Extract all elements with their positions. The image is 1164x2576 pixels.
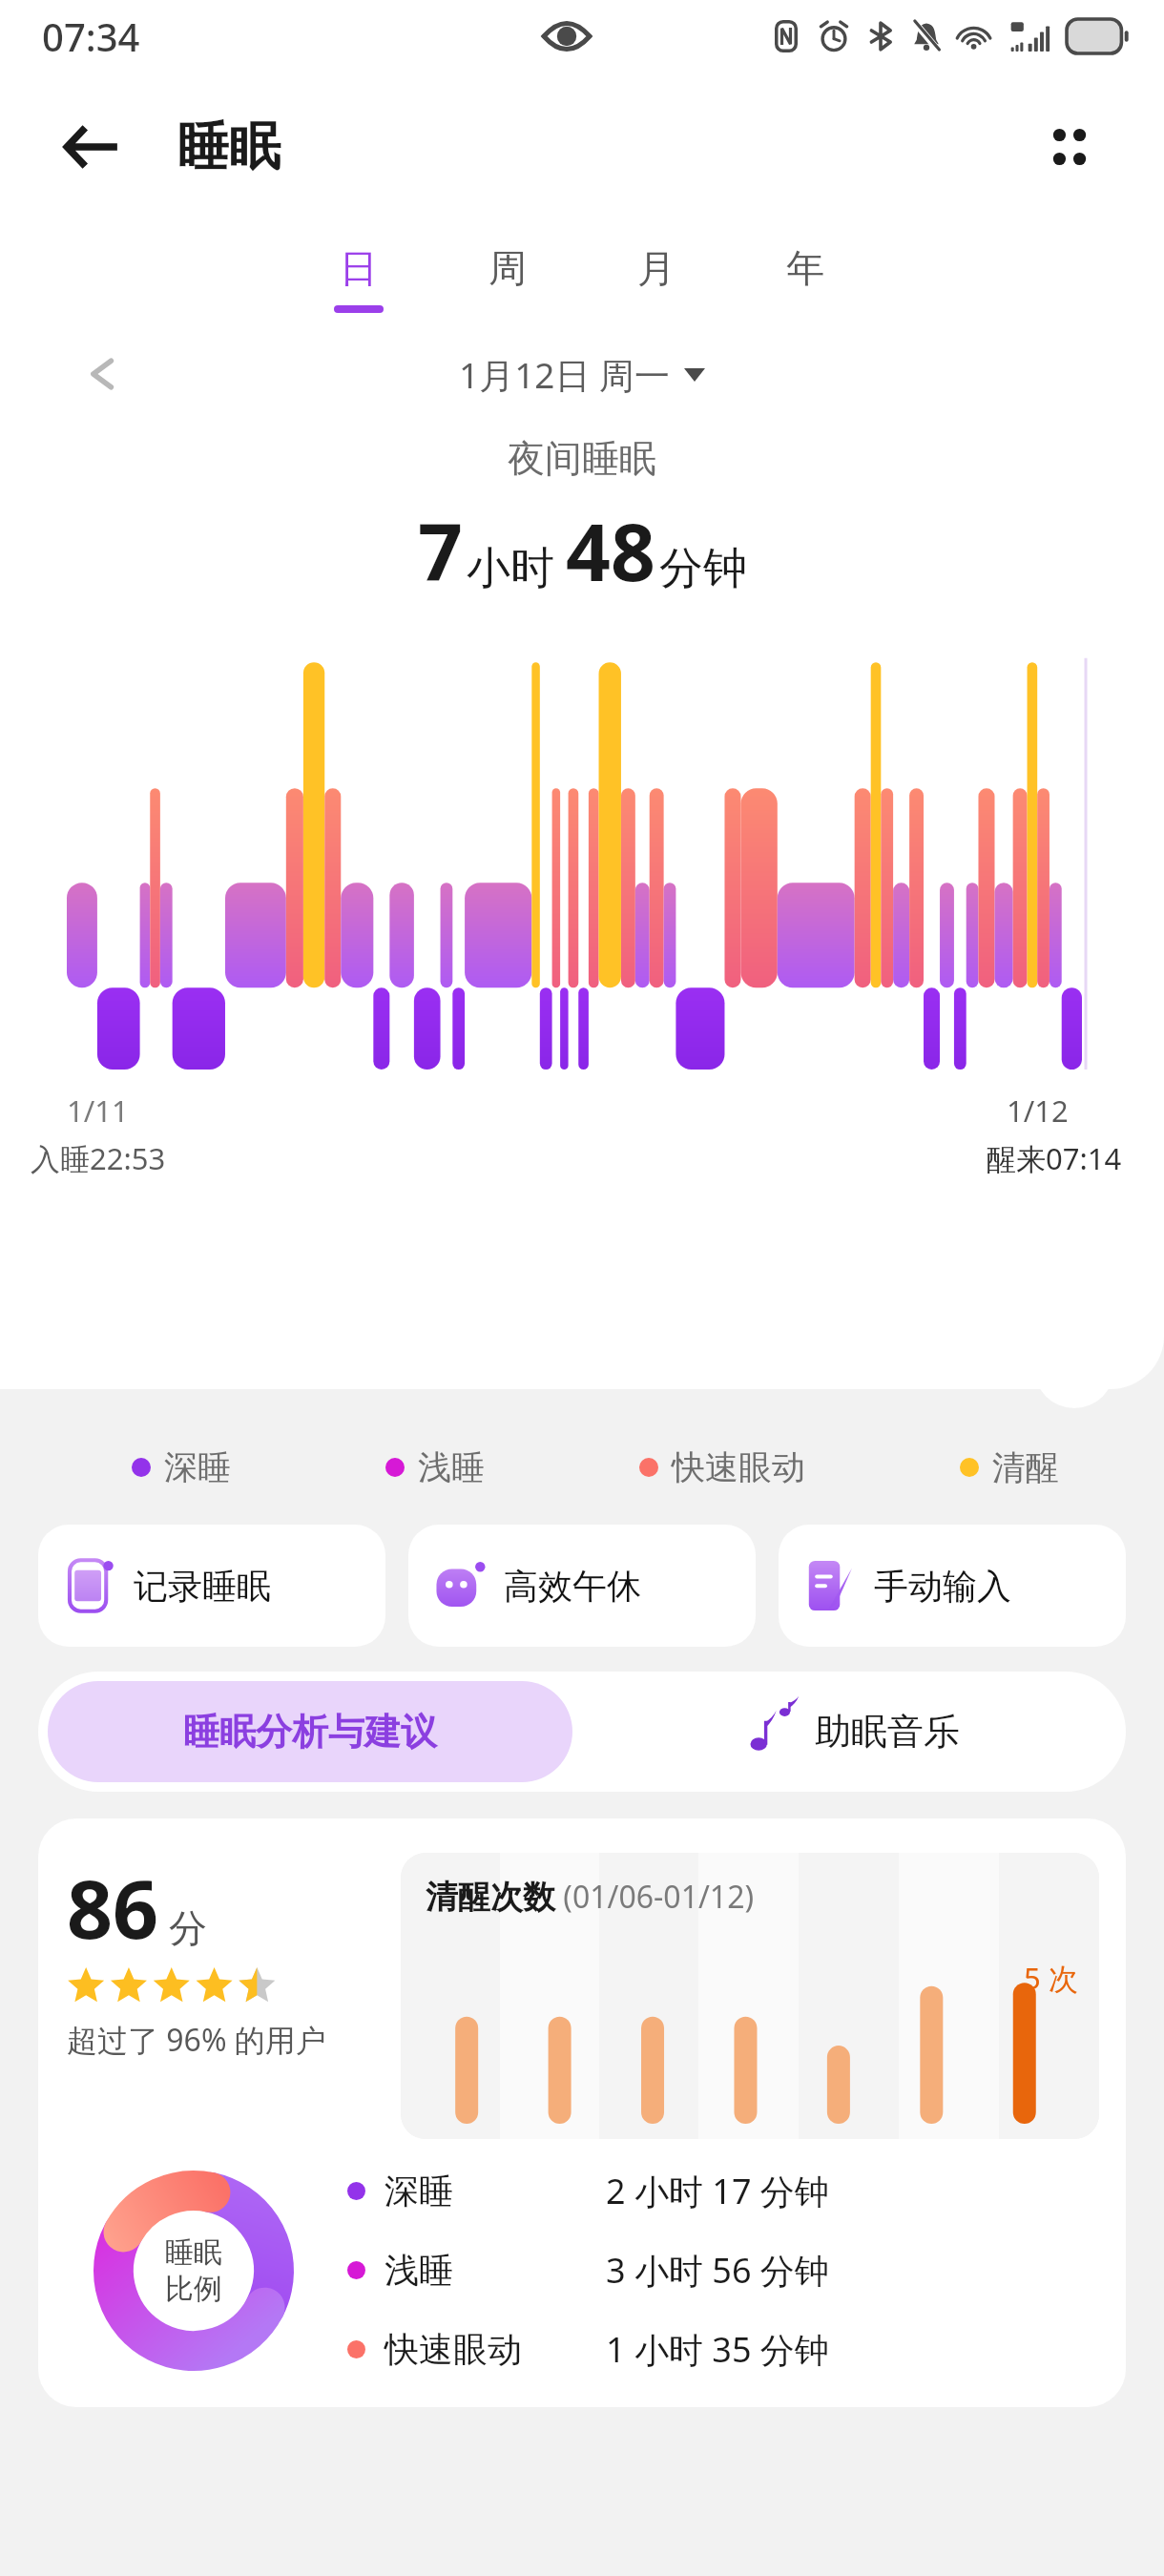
staticText: 醒来07:14 (987, 1138, 1122, 1178)
button[interactable]: 助眠音乐 (582, 1672, 1126, 1792)
staticText: 48 (566, 497, 655, 604)
staticText: 7 (418, 497, 463, 604)
staticText: 1/12 (1007, 1091, 1069, 1131)
staticText: 1月12日 周一 (459, 350, 671, 399)
staticText: 周 (471, 244, 544, 292)
staticText: 手动输入 (874, 1565, 1011, 1608)
button[interactable]: 年 (769, 244, 842, 305)
staticText: 年 (769, 244, 842, 292)
staticText: 小时 (467, 541, 554, 596)
staticText: 3 小时 56 分钟 (606, 2247, 829, 2294)
staticText: 深睡 (385, 2170, 606, 2212)
staticText: 清醒次数 (426, 1877, 555, 1918)
button[interactable]: Back (55, 111, 128, 183)
button[interactable]: 1月12日 周一 (453, 344, 711, 405)
staticText: 助眠音乐 (815, 1709, 960, 1755)
button[interactable]: 高效午休 (408, 1525, 756, 1647)
button[interactable]: More options (1029, 106, 1111, 188)
staticText: 1/11 (67, 1091, 129, 1131)
button[interactable]: 手动输入 (779, 1525, 1126, 1647)
staticText: 比例 (165, 2271, 222, 2307)
staticText: 睡眠 (165, 2234, 222, 2271)
staticText: 睡眠分析与建议 (183, 1709, 437, 1755)
staticText: 入睡22:53 (31, 1138, 166, 1178)
staticText: 07:34 (42, 10, 140, 62)
staticText: 高效午休 (504, 1565, 641, 1608)
staticText: 月 (620, 244, 693, 292)
staticText: (01/06-01/12) (555, 1876, 755, 1918)
button[interactable]: 睡眠分析与建议 (48, 1681, 572, 1782)
staticText: 超过了 96% 的用户 (67, 2019, 326, 2061)
button[interactable]: Sleep detail (1034, 1328, 1114, 1408)
staticText: 夜间睡眠 (508, 435, 656, 482)
staticText: 快速眼动 (672, 1446, 805, 1488)
staticText: 浅睡 (418, 1446, 485, 1488)
staticText: 2 小时 17 分钟 (606, 2168, 829, 2214)
staticText: 睡眠 (177, 114, 281, 179)
staticText: 日 (322, 244, 395, 292)
staticText: 深睡 (164, 1446, 231, 1488)
staticText: 1 小时 35 分钟 (606, 2326, 829, 2373)
staticText: 清醒 (992, 1446, 1059, 1488)
staticText: 分钟 (659, 541, 747, 596)
staticText: 快速眼动 (385, 2328, 606, 2371)
button[interactable]: 86 (38, 1818, 1126, 2407)
staticText: 浅睡 (385, 2249, 606, 2292)
staticText: 5 次 (1024, 1958, 1078, 1998)
staticText: 记录睡眠 (134, 1565, 271, 1608)
button[interactable]: 月 (620, 244, 693, 305)
button[interactable]: Previous day (71, 342, 135, 406)
staticText: 分 (169, 1904, 207, 1952)
staticText: 86 (67, 1853, 159, 1962)
button[interactable]: 记录睡眠 (38, 1525, 385, 1647)
button[interactable]: 日 (322, 244, 395, 313)
button[interactable]: 周 (471, 244, 544, 305)
